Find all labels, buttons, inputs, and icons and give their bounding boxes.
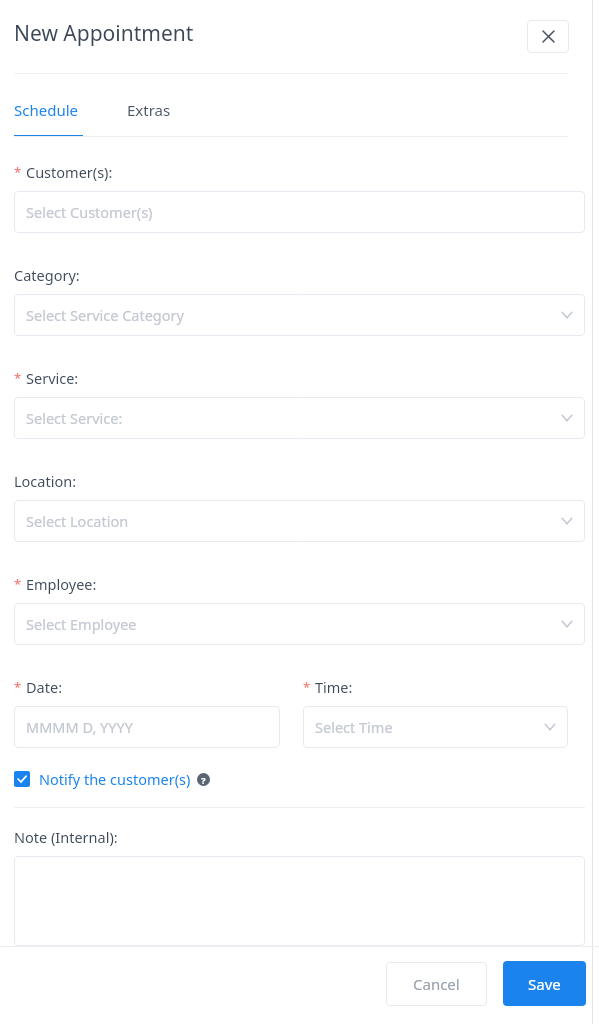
staticText: * [14, 678, 22, 696]
staticText: Note (Internal): [14, 827, 118, 847]
staticText: New Appointment [14, 19, 194, 48]
staticText: Time: [315, 677, 353, 697]
button[interactable]: Cancel [386, 962, 487, 1006]
staticText: Notify the customer(s) [39, 769, 191, 789]
staticText: MMMM D, YYYY [26, 717, 270, 737]
button[interactable]: Select Service: [14, 397, 585, 439]
button[interactable]: MMMM D, YYYY [14, 706, 280, 748]
staticText: Employee: [26, 574, 97, 594]
staticText: Service: [26, 368, 79, 388]
button[interactable]: Select Customer(s) [14, 191, 585, 233]
staticText: Select Location [26, 511, 559, 531]
button[interactable]: Schedule [14, 100, 83, 137]
button[interactable]: Help [197, 773, 210, 786]
staticText: * [14, 575, 22, 593]
staticText: Customer(s): [26, 162, 113, 182]
button[interactable]: Extras [127, 100, 175, 137]
staticText: Location: [14, 471, 77, 491]
staticText: Save [528, 974, 561, 994]
staticText: Select Service Category [26, 305, 559, 325]
button[interactable]: Select Time [303, 706, 568, 748]
staticText: Category: [14, 265, 80, 285]
staticText: Select Employee [26, 614, 559, 634]
button[interactable]: Select Location [14, 500, 585, 542]
staticText: ? [201, 774, 206, 786]
staticText: * [14, 163, 22, 181]
staticText: * [14, 369, 22, 387]
staticText: Extras [127, 100, 171, 120]
button[interactable]: Close [527, 20, 569, 53]
staticText: Select Service: [26, 408, 559, 428]
staticText: Schedule [14, 100, 78, 120]
staticText: Cancel [413, 974, 460, 994]
button[interactable]: Save [503, 961, 586, 1006]
staticText: Select Customer(s) [26, 202, 575, 222]
staticText: * [303, 678, 311, 696]
staticText: Select Time [315, 717, 542, 737]
staticText: Date: [26, 677, 63, 697]
button[interactable]: Notify the customer(s) [14, 769, 210, 789]
button[interactable] [14, 856, 585, 946]
button[interactable]: Select Service Category [14, 294, 585, 336]
button[interactable]: Select Employee [14, 603, 585, 645]
